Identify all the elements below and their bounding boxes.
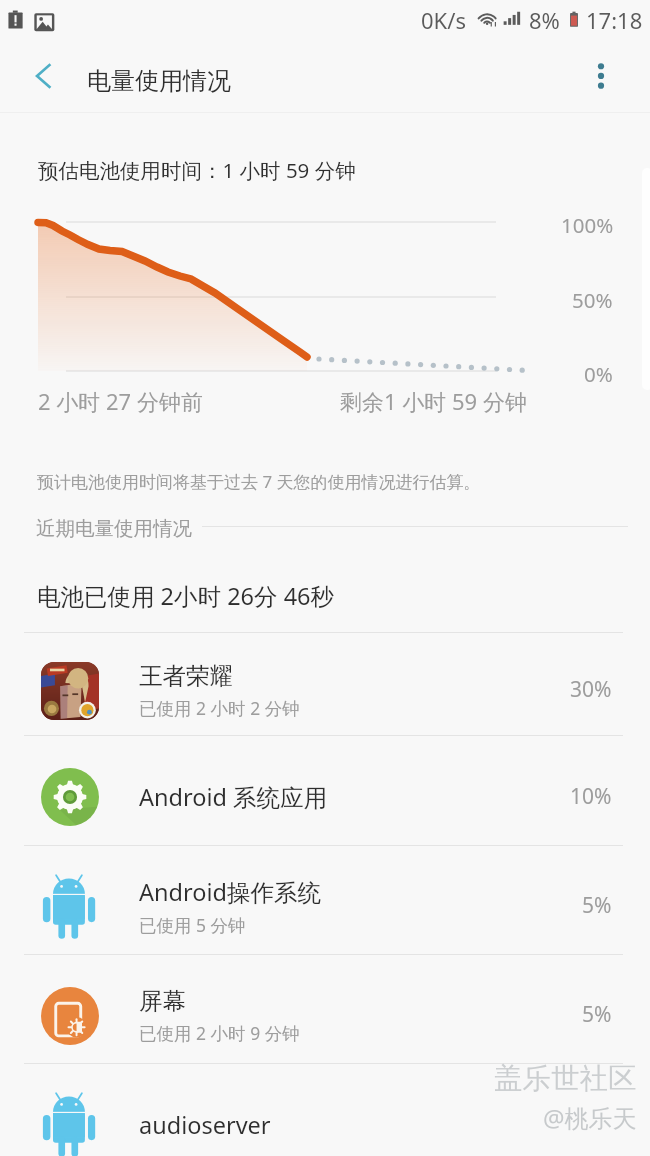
staticText: 10%: [570, 782, 612, 811]
button[interactable]: Back: [20, 53, 66, 99]
staticText: @桃乐天: [543, 1101, 637, 1134]
staticText: 预估电池使用时间：1 小时 59 分钟: [38, 156, 356, 184]
staticText: 0%: [584, 360, 613, 388]
button[interactable]: audioserver: [0, 1063, 650, 1156]
staticText: 0K/s: [421, 5, 466, 35]
staticText: 王者荣耀: [139, 661, 233, 691]
button[interactable]: More options: [580, 55, 622, 97]
staticText: 5%: [582, 1000, 612, 1029]
staticText: Android操作系统: [139, 876, 321, 908]
button[interactable]: 王者荣耀: [0, 632, 650, 735]
staticText: 屏幕: [139, 986, 186, 1016]
staticText: 电量使用情况: [87, 66, 231, 96]
staticText: Android 系统应用: [139, 781, 328, 813]
staticText: 盖乐世社区: [494, 1061, 637, 1097]
staticText: 2 小时 27 分钟前: [38, 386, 203, 416]
staticText: 近期电量使用情况: [36, 516, 192, 541]
staticText: 已使用 5 分钟: [139, 913, 246, 937]
staticText: 5%: [582, 891, 612, 920]
staticText: audioserver: [139, 1109, 271, 1141]
staticText: 100%: [561, 211, 614, 239]
staticText: 剩余1 小时 59 分钟: [340, 386, 527, 416]
staticText: 30%: [570, 675, 612, 704]
staticText: 8%: [529, 5, 560, 35]
staticText: 已使用 2 小时 9 分钟: [139, 1021, 300, 1045]
button[interactable]: Android操作系统: [0, 845, 650, 954]
staticText: 17:18: [586, 5, 643, 35]
staticText: 已使用 2 小时 2 分钟: [139, 696, 300, 720]
staticText: 50%: [572, 286, 613, 314]
button[interactable]: Android 系统应用: [0, 735, 650, 845]
staticText: 预计电池使用时间将基于过去 7 天您的使用情况进行估算。: [37, 470, 481, 493]
button[interactable]: 屏幕: [0, 954, 650, 1063]
staticText: 电池已使用 2小时 26分 46秒: [37, 580, 335, 612]
